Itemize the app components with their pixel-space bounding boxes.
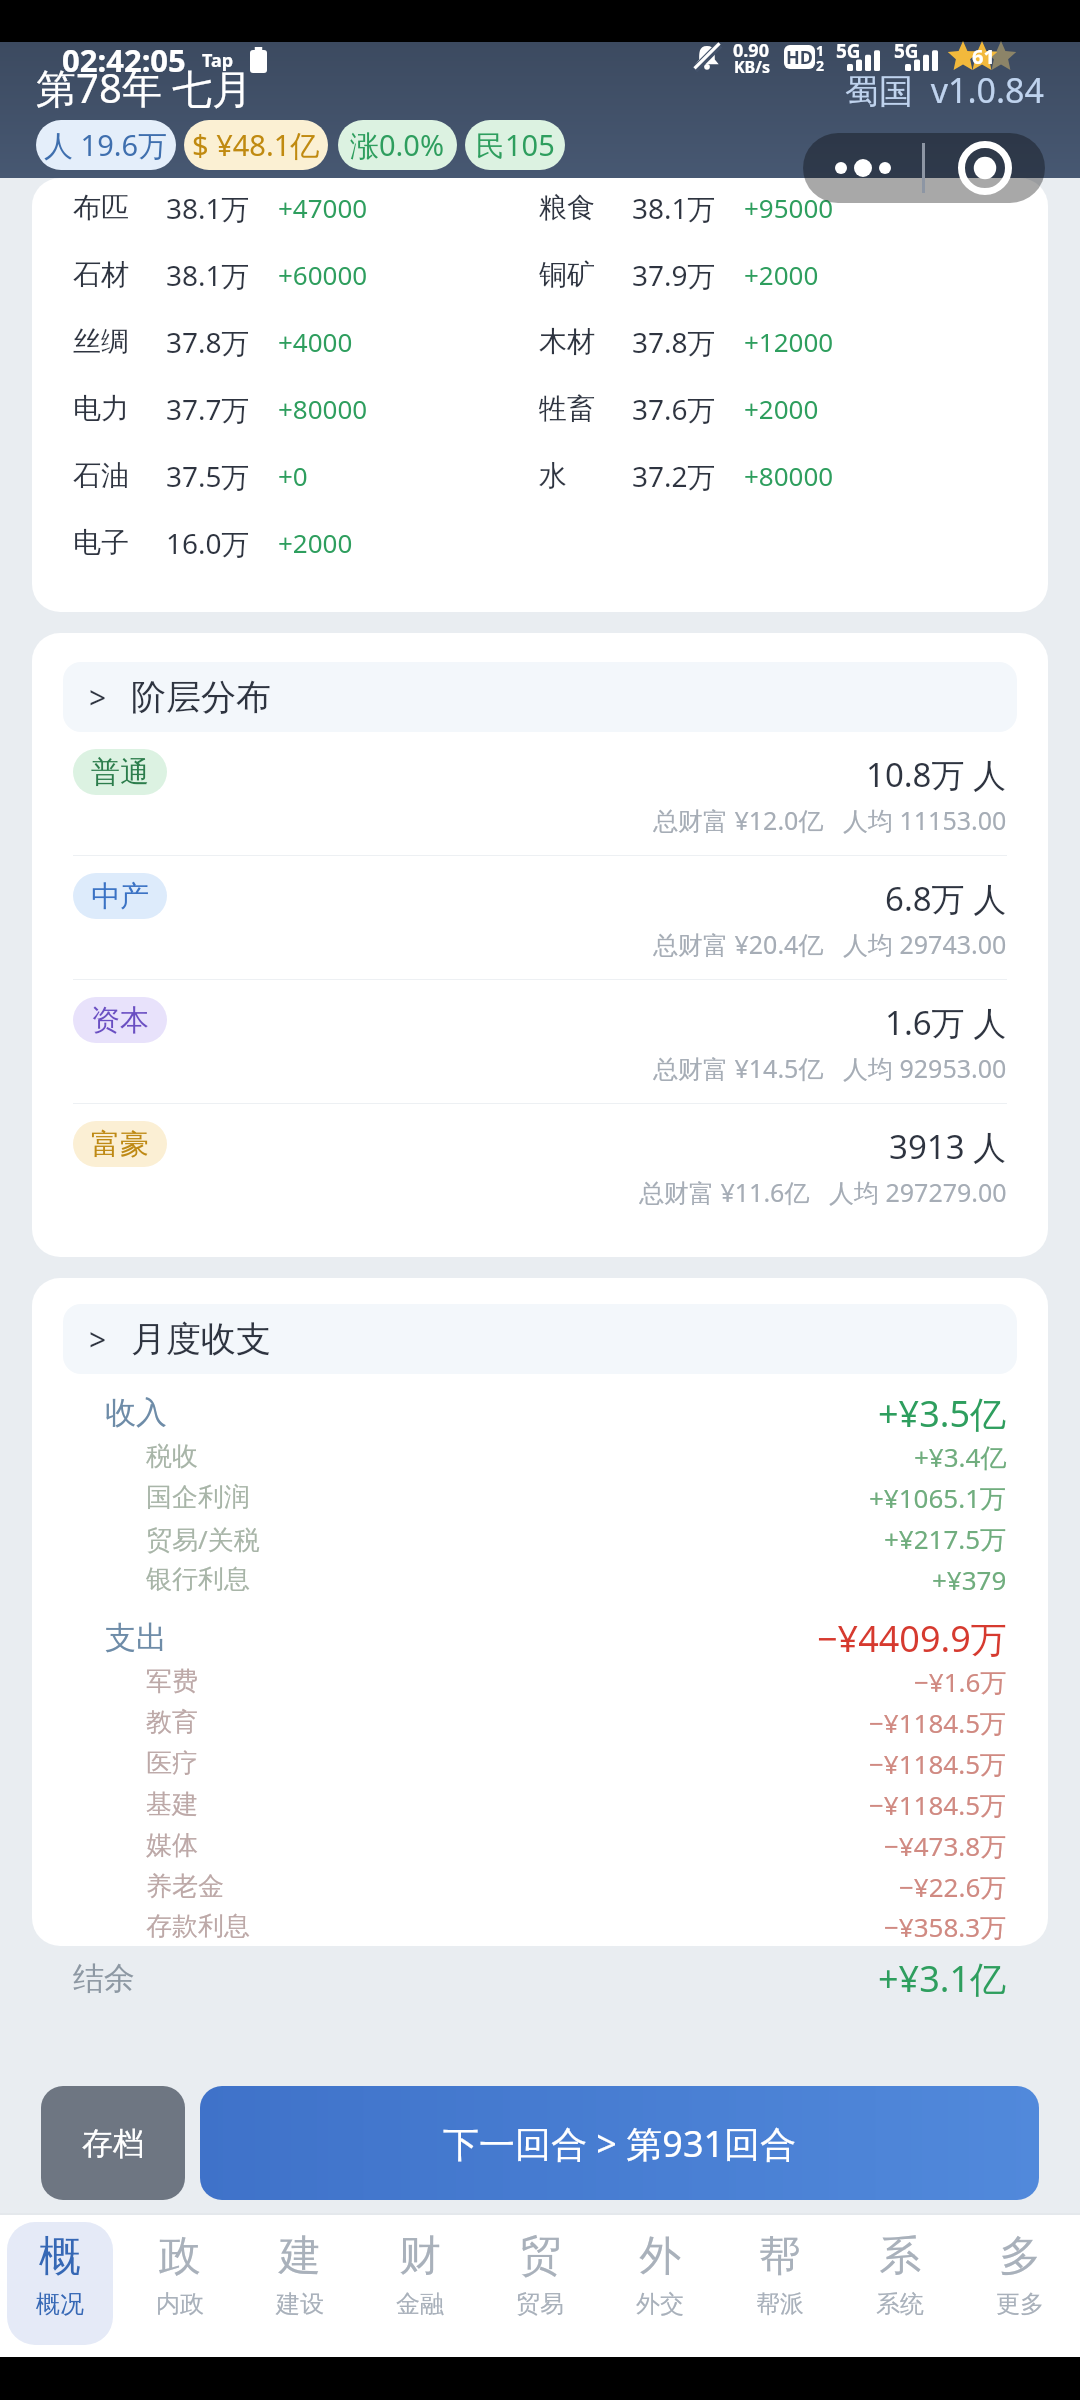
staticText: KB/s [734, 56, 770, 78]
staticText: 支出 [105, 1618, 167, 1657]
staticText: 养老金 [146, 1870, 224, 1903]
staticText: 总财富 ¥11.6亿 [639, 1175, 810, 1209]
button[interactable]: 系 [840, 2215, 960, 2357]
staticText: −¥1184.5万 [869, 1787, 1007, 1823]
staticText: −¥1184.5万 [869, 1746, 1007, 1782]
staticText: 3913 人 [889, 1124, 1007, 1169]
staticText: +4000 [278, 324, 353, 359]
staticText: +0 [278, 458, 308, 493]
staticText: 帮 [759, 2230, 801, 2283]
staticText: 37.5万 [166, 457, 250, 495]
button[interactable]: 贸 [480, 2215, 600, 2357]
button[interactable]: 富豪 [32, 1104, 1048, 1227]
staticText: 人均 297279.00 [829, 1175, 1007, 1209]
staticText: 系统 [876, 2289, 924, 2319]
staticText: Tap [202, 48, 234, 73]
staticText: −¥1.6万 [914, 1664, 1007, 1700]
button[interactable]: 存档 [41, 2086, 185, 2200]
staticText: 帮派 [756, 2289, 804, 2319]
staticText: 蜀国 v1.0.84 [845, 67, 1044, 113]
staticText: 粮食 [539, 190, 595, 225]
staticText: 金融 [396, 2289, 444, 2319]
staticText: 37.7万 [166, 390, 250, 428]
staticText: 61 [972, 43, 995, 70]
staticText: 建 [279, 2230, 321, 2283]
button[interactable]: 帮 [720, 2215, 840, 2357]
button[interactable]: 资本 [32, 980, 1048, 1103]
staticText: > [89, 677, 107, 718]
staticText: 基建 [146, 1788, 198, 1821]
button[interactable]: > [63, 662, 1017, 732]
staticText: 布匹 [73, 190, 129, 225]
staticText: 水 [539, 458, 567, 493]
staticText: 更多 [996, 2289, 1044, 2319]
staticText: +95000 [744, 190, 834, 225]
button[interactable]: 外 [600, 2215, 720, 2357]
button[interactable]: $ ¥48.1亿 [184, 120, 328, 170]
staticText: HD [786, 45, 813, 69]
staticText: +¥3.1亿 [878, 1954, 1007, 2003]
staticText: 涨0.0% [350, 125, 445, 165]
button[interactable]: 涨0.0% [338, 120, 457, 170]
staticText: 收入 [105, 1393, 167, 1432]
staticText: +47000 [278, 190, 368, 225]
staticText: +2000 [278, 525, 353, 560]
staticText: 37.2万 [632, 457, 716, 495]
staticText: 石材 [73, 257, 129, 292]
staticText: 贸 [519, 2230, 561, 2283]
button[interactable]: 概 [0, 2215, 120, 2357]
staticText: 总财富 ¥20.4亿 [653, 927, 824, 961]
staticText: 多 [999, 2230, 1041, 2283]
button[interactable]: 人 19.6万 [36, 120, 176, 170]
staticText: 丝绸 [73, 324, 129, 359]
staticText: 外 [639, 2230, 681, 2283]
button[interactable]: More options [803, 133, 1045, 203]
staticText: +60000 [278, 257, 368, 292]
staticText: 总财富 ¥12.0亿 [653, 803, 824, 837]
staticText: 1.6万 人 [885, 1000, 1007, 1045]
button[interactable]: 政 [120, 2215, 240, 2357]
staticText: 月度收支 [131, 1317, 271, 1361]
button[interactable]: 普通 [32, 732, 1048, 855]
staticText: 0.90 [733, 38, 769, 63]
staticText: 军费 [146, 1665, 198, 1698]
staticText: 媒体 [146, 1829, 198, 1862]
button[interactable]: > [63, 1304, 1017, 1374]
staticText: +¥1065.1万 [869, 1480, 1007, 1516]
staticText: 37.8万 [166, 323, 250, 361]
staticText: +¥217.5万 [884, 1521, 1007, 1557]
button[interactable]: 中产 [32, 856, 1048, 979]
staticText: 民105 [476, 125, 555, 165]
staticText: +12000 [744, 324, 834, 359]
staticText: 38.1万 [166, 256, 250, 294]
staticText: > [89, 1319, 107, 1360]
staticText: −¥358.3万 [884, 1909, 1007, 1945]
button[interactable]: 下一回合 > 第931回合 [200, 2086, 1039, 2200]
staticText: 银行利息 [146, 1563, 250, 1596]
staticText: 38.1万 [632, 189, 716, 227]
staticText: 阶层分布 [131, 675, 271, 719]
staticText: 38.1万 [166, 189, 250, 227]
staticText: 16.0万 [166, 524, 250, 562]
staticText: 人均 29743.00 [843, 927, 1007, 961]
button[interactable]: 建 [240, 2215, 360, 2357]
staticText: 医疗 [146, 1747, 198, 1780]
staticText: +80000 [744, 458, 834, 493]
staticText: 2 [816, 56, 825, 75]
staticText: 政 [159, 2230, 201, 2283]
staticText: 37.9万 [632, 256, 716, 294]
button[interactable]: 民105 [465, 120, 565, 170]
staticText: −¥1184.5万 [869, 1705, 1007, 1741]
staticText: 牲畜 [539, 391, 595, 426]
button[interactable]: 多 [960, 2215, 1080, 2357]
staticText: +2000 [744, 391, 819, 426]
staticText: $ ¥48.1亿 [192, 125, 320, 165]
staticText: 中产 [91, 878, 149, 915]
staticText: 普通 [91, 754, 149, 791]
staticText: 人 19.6万 [44, 125, 168, 165]
staticText: 贸易/关税 [146, 1521, 260, 1557]
staticText: 国企利润 [146, 1481, 250, 1514]
staticText: 概 [39, 2230, 81, 2283]
staticText: 10.8万 人 [866, 752, 1007, 797]
button[interactable]: 财 [360, 2215, 480, 2357]
